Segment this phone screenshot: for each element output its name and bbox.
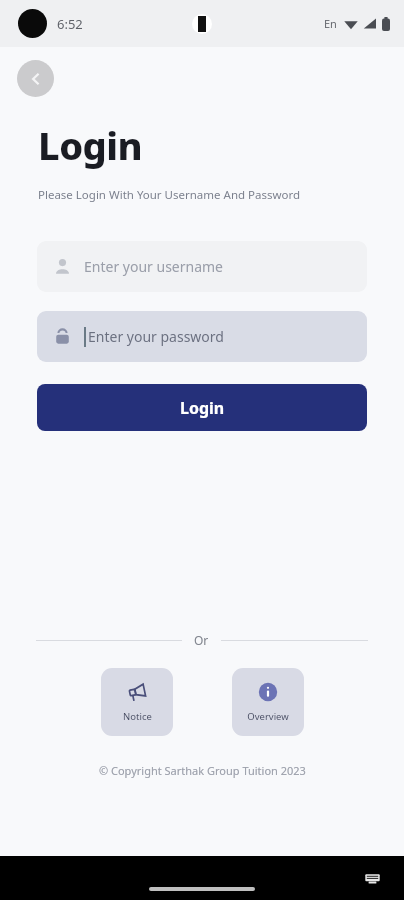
staticText: Notice	[123, 710, 152, 723]
button[interactable]: Enter your password	[37, 311, 367, 362]
button[interactable]: Overview	[232, 668, 304, 736]
button[interactable]: Enter your username	[37, 241, 367, 292]
staticText: 6:52	[57, 15, 83, 33]
button[interactable]: Back	[17, 60, 54, 97]
button[interactable]: Notice	[101, 668, 173, 736]
staticText: En	[324, 16, 337, 31]
staticText: Login	[180, 397, 225, 419]
staticText: Enter your password	[88, 327, 224, 346]
staticText: Or	[194, 632, 209, 648]
staticText: © Copyright Sarthak Group Tuition 2023	[99, 763, 306, 778]
button[interactable]: Switch keyboard	[360, 866, 384, 890]
staticText: Please Login With Your Username And Pass…	[38, 187, 301, 203]
staticText: Login	[38, 119, 143, 171]
button[interactable]: Login	[37, 384, 367, 431]
staticText: Overview	[247, 710, 289, 723]
staticText: Enter your username	[84, 257, 224, 276]
